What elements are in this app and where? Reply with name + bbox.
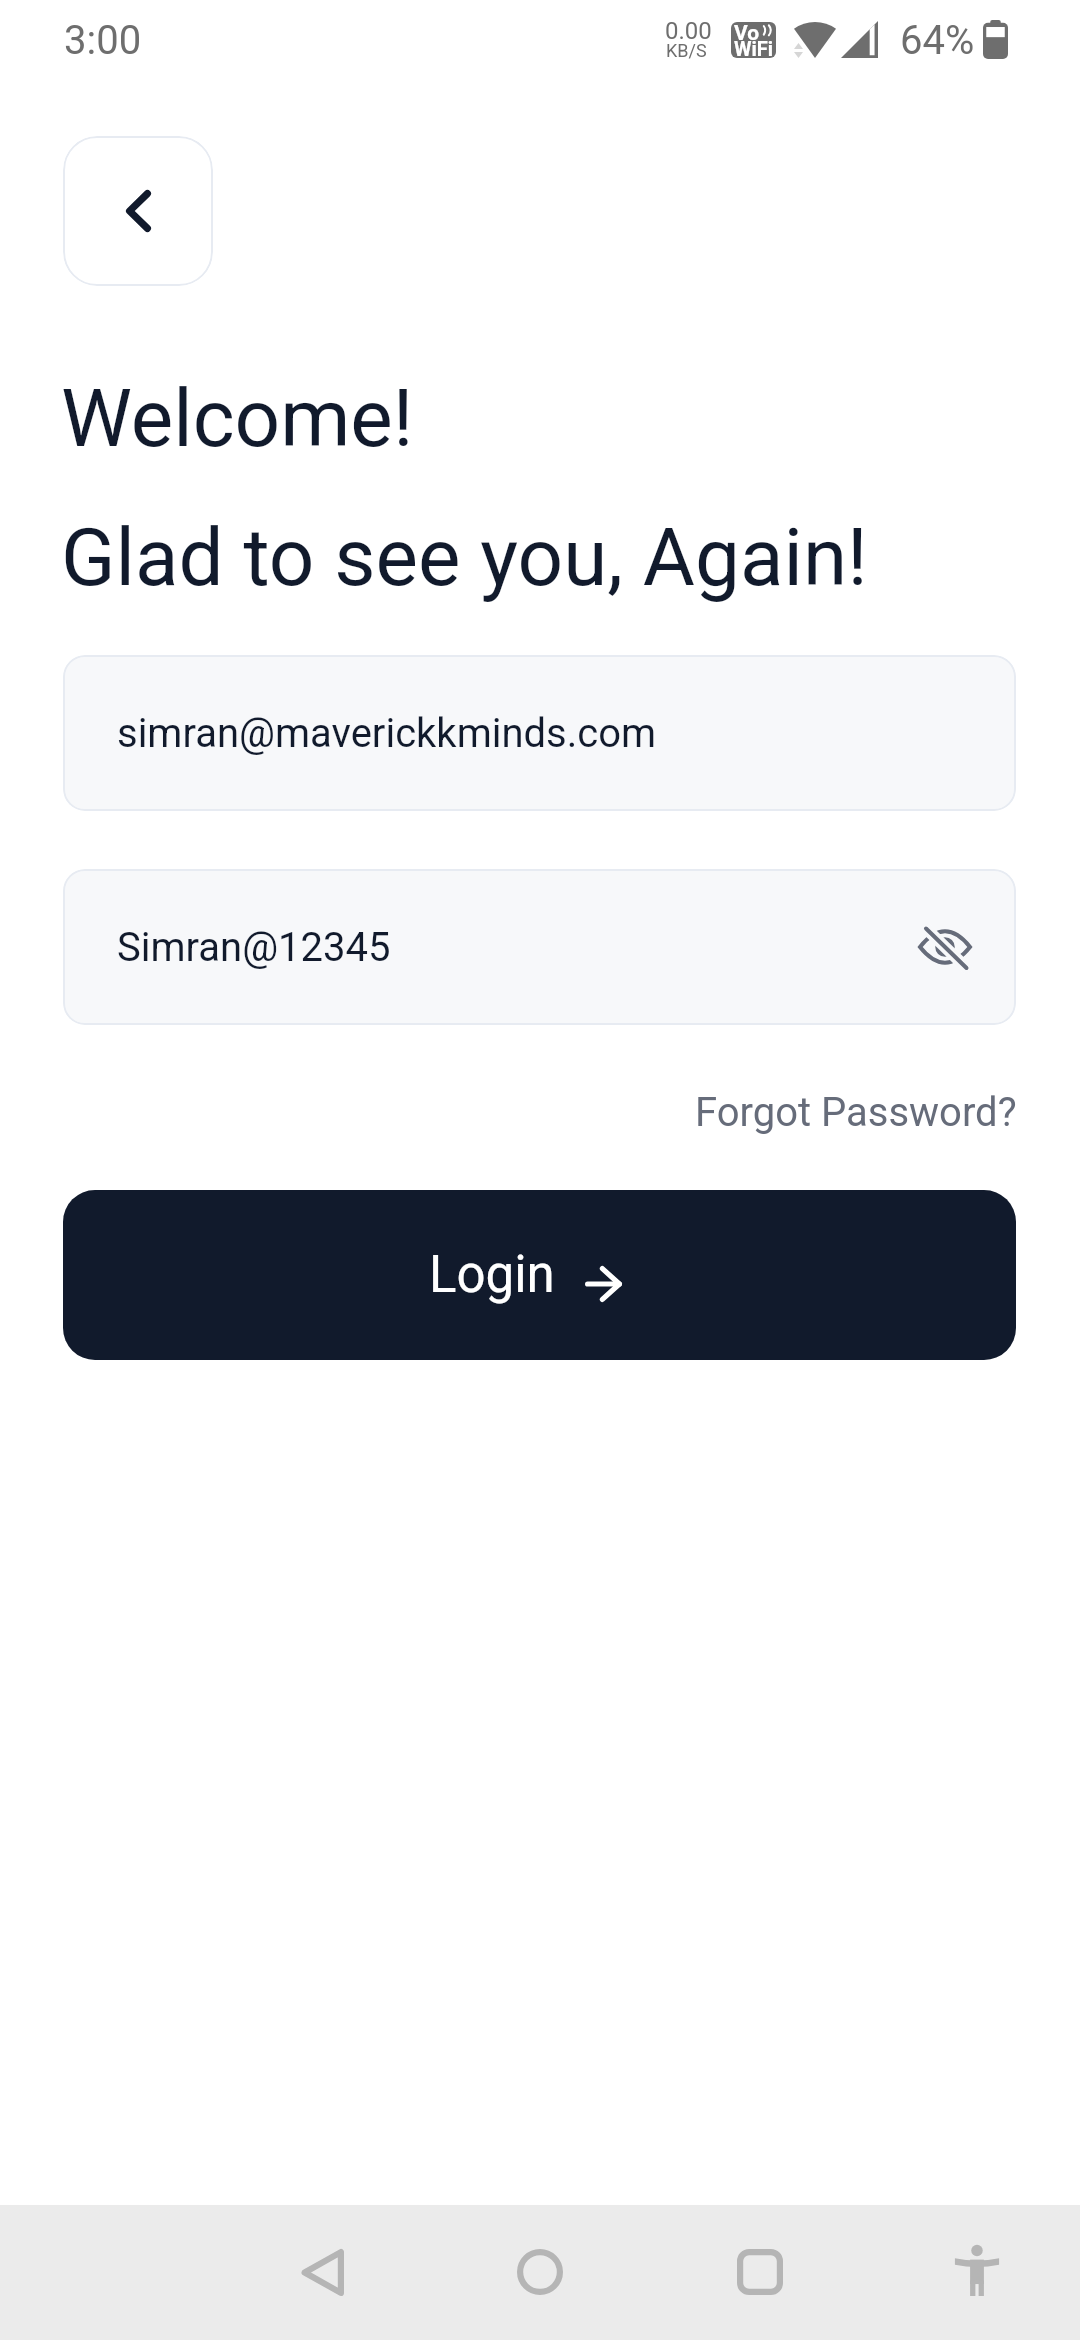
button[interactable]: simran@maverickkminds.com	[63, 655, 1016, 811]
staticText: WiFi	[734, 37, 774, 58]
button[interactable]: Login	[63, 1190, 1016, 1360]
staticText: Vo	[734, 22, 760, 46]
staticText: KB/S	[666, 40, 707, 61]
staticText: Login	[429, 1245, 555, 1305]
button[interactable]: Forgot Password?	[695, 1089, 1017, 1136]
staticText: 0.00	[665, 17, 712, 45]
staticText: Glad to see you, Again!	[61, 511, 868, 605]
staticText: Simran@12345	[117, 924, 391, 971]
button[interactable]: Back	[267, 2217, 377, 2327]
staticText: 64%	[900, 17, 975, 64]
staticText: Forgot Password?	[695, 1089, 1017, 1136]
staticText: Welcome!	[61, 372, 414, 466]
staticText: 3:00	[64, 17, 142, 64]
button[interactable]: Home	[485, 2217, 595, 2327]
button[interactable]: Recent apps	[705, 2217, 815, 2327]
button[interactable]: Accessibility	[922, 2215, 1032, 2325]
staticText: simran@maverickkminds.com	[117, 710, 657, 757]
button[interactable]: Simran@12345	[63, 869, 1016, 1025]
button[interactable]: Back	[63, 136, 213, 286]
button[interactable]: Show password	[905, 907, 985, 987]
